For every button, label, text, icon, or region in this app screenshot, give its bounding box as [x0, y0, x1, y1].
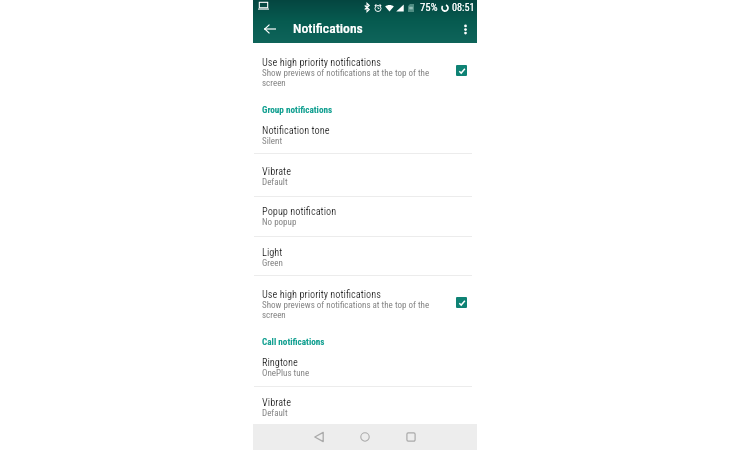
staticText: Default [262, 408, 288, 419]
staticText: Notifications [293, 20, 363, 36]
staticText: Default [262, 177, 288, 188]
staticText: Call notifications [262, 336, 325, 347]
staticText: OnePlus tune [262, 368, 310, 379]
button[interactable]: Home [352, 424, 378, 450]
staticText: Show previews of notifications at the to… [262, 68, 432, 88]
staticText: 75% [420, 1, 438, 14]
button[interactable]: Recent apps [398, 424, 424, 450]
staticText: No popup [262, 217, 297, 228]
staticText: Green [262, 258, 283, 269]
staticText: Show previews of notifications at the to… [262, 300, 432, 320]
button[interactable]: Vibrate [253, 396, 477, 422]
staticText: Notification tone [262, 124, 330, 136]
staticText: Vibrate [262, 396, 291, 408]
staticText: Group notifications [262, 104, 333, 115]
staticText: Popup notification [262, 205, 337, 217]
button[interactable]: Use high priority notifications toggle [456, 65, 467, 76]
button[interactable]: Popup notification [253, 205, 477, 231]
staticText: Light [262, 246, 283, 258]
staticText: Vibrate [262, 165, 291, 177]
staticText: Use high priority notifications [262, 288, 381, 300]
button[interactable]: More options [454, 18, 476, 40]
staticText: Use high priority notifications [262, 56, 381, 68]
staticText: Ringtone [262, 356, 298, 368]
button[interactable]: Ringtone [253, 356, 477, 382]
button[interactable]: Group notifications [262, 104, 333, 115]
button[interactable]: Back [306, 424, 332, 450]
staticText: Silent [262, 136, 283, 147]
button[interactable]: Light [253, 246, 477, 272]
button[interactable]: Vibrate [253, 165, 477, 191]
button[interactable]: Notification tone [253, 124, 477, 150]
button[interactable]: Navigate up [259, 18, 281, 40]
button[interactable]: Use high priority notifications [253, 56, 477, 90]
button[interactable]: Call notifications [262, 336, 325, 347]
staticText: 08:51 [452, 2, 475, 14]
button[interactable]: Use high priority notifications [253, 288, 477, 322]
button[interactable]: Use high priority notifications toggle [456, 297, 467, 308]
